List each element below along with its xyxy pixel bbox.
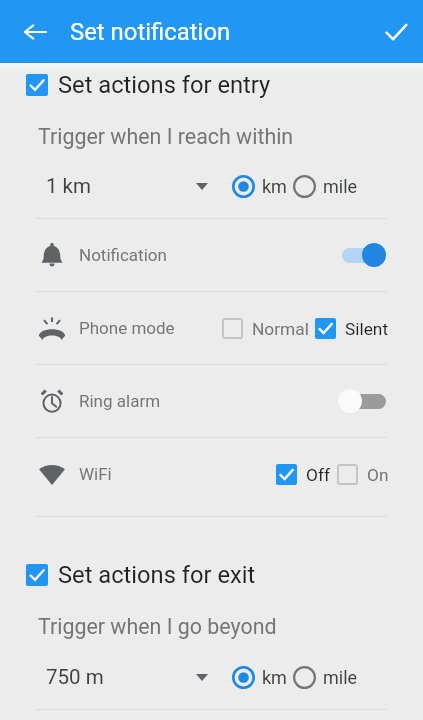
- button[interactable]: Notification toggle, on: [338, 242, 386, 268]
- button[interactable]: On: [337, 464, 389, 485]
- staticText: Phone mode: [79, 318, 175, 338]
- staticText: km: [262, 176, 287, 197]
- button[interactable]: km: [232, 175, 287, 198]
- staticText: mile: [323, 176, 358, 197]
- staticText: 1 km: [46, 174, 91, 198]
- button[interactable]: Back: [13, 10, 57, 54]
- button[interactable]: Ring alarm: [0, 365, 423, 437]
- staticText: Trigger when I reach within: [38, 124, 294, 149]
- staticText: WiFi: [79, 464, 112, 484]
- staticText: Normal: [252, 319, 309, 339]
- staticText: 750 m: [46, 665, 104, 689]
- staticText: On: [367, 465, 389, 485]
- button[interactable]: km: [232, 666, 287, 689]
- button[interactable]: Normal: [222, 318, 309, 339]
- staticText: Set notification: [70, 18, 231, 46]
- button[interactable]: WiFi: [0, 438, 423, 510]
- button[interactable]: Ring alarm toggle, off: [338, 388, 386, 414]
- button[interactable]: mile: [293, 666, 358, 689]
- staticText: km: [262, 667, 287, 688]
- staticText: mile: [323, 667, 358, 688]
- staticText: Ring alarm: [79, 391, 161, 411]
- staticText: Silent: [345, 319, 389, 339]
- button[interactable]: mile: [293, 175, 358, 198]
- staticText: Set actions for entry: [58, 71, 271, 99]
- button[interactable]: 1 km: [36, 166, 222, 206]
- button[interactable]: Set actions for exit: [0, 554, 423, 596]
- button[interactable]: Set actions for entry: [0, 64, 423, 106]
- button[interactable]: Done: [374, 10, 418, 54]
- button[interactable]: Phone mode: [0, 292, 423, 364]
- staticText: Set actions for exit: [58, 561, 256, 589]
- button[interactable]: 750 m: [36, 657, 222, 697]
- button[interactable]: Off: [276, 464, 330, 485]
- staticText: Off: [306, 465, 330, 485]
- staticText: Notification: [79, 245, 167, 265]
- button[interactable]: Silent: [315, 318, 389, 339]
- button[interactable]: Notification: [0, 219, 423, 291]
- staticText: Trigger when I go beyond: [38, 614, 277, 639]
